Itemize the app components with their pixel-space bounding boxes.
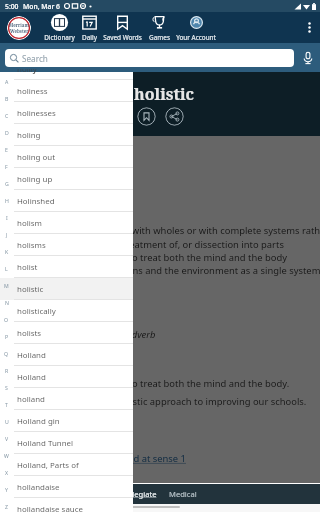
- button[interactable]: holisms: [0, 234, 133, 256]
- button[interactable]: Voice search: [300, 50, 316, 66]
- staticText: holistically hō-ˈli-sti-k(ə-)lē , adverb: [10, 328, 156, 341]
- button[interactable]: holinesses: [0, 102, 133, 124]
- staticText: W: [4, 452, 9, 459]
- button[interactable]: Collegiate: [116, 484, 162, 504]
- staticText: holistically: [17, 306, 56, 317]
- staticText: holing out: [17, 152, 56, 163]
- staticText: Games: [149, 33, 170, 42]
- staticText: H: [5, 197, 9, 204]
- staticText: F: [5, 163, 8, 170]
- button[interactable]: Holinshed: [0, 190, 133, 212]
- staticText: Holinshed: [17, 196, 55, 207]
- button[interactable]: Games: [137, 12, 181, 43]
- staticText: L: [5, 265, 8, 272]
- button[interactable]: holism: [0, 212, 133, 234]
- button[interactable]: Holland, Parts of: [0, 454, 133, 476]
- staticText: hollandaise: [17, 482, 60, 493]
- staticText: B: [5, 95, 9, 102]
- staticText: T: [5, 401, 8, 408]
- staticText: Holland gin: [17, 416, 60, 427]
- button[interactable]: holists: [0, 322, 133, 344]
- staticText: E: [5, 146, 8, 153]
- staticText: holinesses: [17, 108, 56, 119]
- staticText: holists: [17, 328, 42, 339]
- staticText: Mon, Mar 6: [23, 2, 60, 11]
- button[interactable]: Saved Words: [100, 12, 144, 43]
- staticText: First Known Use: [10, 426, 95, 440]
- staticText: R: [5, 367, 9, 374]
- staticText: Holland Tunnel: [17, 438, 74, 449]
- staticText: J: [6, 231, 8, 238]
- staticText: 2 : relating to or concerned with wholes…: [10, 224, 320, 276]
- staticText: Q: [4, 350, 9, 357]
- staticText: holisms: [17, 240, 46, 251]
- staticText: holistic in a: [10, 364, 70, 378]
- staticText: hollandaise sauce: [17, 504, 83, 512]
- button[interactable]: hollandaise sauce: [0, 498, 133, 512]
- staticText: holistic: [17, 284, 44, 295]
- button[interactable]: Share: [165, 107, 184, 126]
- staticText: holistic medicine attempts to treat both…: [10, 377, 307, 408]
- button[interactable]: holily: [0, 72, 133, 80]
- staticText: Collegiate: [121, 489, 157, 499]
- staticText: 5:00: [5, 2, 19, 11]
- button[interactable]: holistic: [0, 278, 133, 300]
- button[interactable]: Medical: [164, 484, 202, 504]
- staticText: holing: [17, 130, 41, 141]
- staticText: Holland: [17, 350, 46, 361]
- staticText: from holistic: [10, 308, 77, 322]
- button[interactable]: holing out: [0, 146, 133, 168]
- staticText: holiness: [17, 86, 48, 97]
- staticText: Daily: [82, 33, 97, 42]
- button[interactable]: holiness: [0, 80, 133, 102]
- staticText: 1926, in the meaning defined at sense 1: [10, 452, 186, 465]
- button[interactable]: hollandaise: [0, 476, 133, 498]
- button[interactable]: holing up: [0, 168, 133, 190]
- button[interactable]: Merriam-Webster home: [7, 16, 31, 40]
- staticText: holland: [17, 394, 45, 405]
- button[interactable]: Holland: [0, 344, 133, 366]
- button[interactable]: holing: [0, 124, 133, 146]
- button[interactable]: holistically: [0, 300, 133, 322]
- staticText: M: [4, 282, 9, 289]
- staticText: P: [5, 333, 9, 340]
- staticText: holism: [17, 218, 42, 229]
- staticText: Z: [5, 503, 8, 510]
- staticText: O: [4, 316, 9, 323]
- staticText: A: [5, 78, 9, 85]
- staticText: Dictionary: [44, 33, 75, 42]
- staticText: N: [5, 299, 9, 306]
- button[interactable]: holland: [0, 388, 133, 410]
- staticText: to holism: [10, 206, 52, 219]
- staticText: Merriam: [9, 22, 29, 28]
- staticText: holily: [17, 72, 37, 75]
- staticText: Y: [5, 486, 8, 493]
- button[interactable]: Holland: [0, 366, 133, 388]
- staticText: Saved Words: [103, 33, 142, 42]
- staticText: Medical: [169, 489, 197, 499]
- button[interactable]: More options: [300, 18, 318, 36]
- staticText: D: [5, 129, 9, 136]
- staticText: Definition of: [10, 144, 76, 158]
- staticText: holing up: [17, 174, 53, 185]
- staticText: holistic: [134, 83, 195, 105]
- staticText: Other Words: [10, 286, 77, 300]
- button[interactable]: holist: [0, 256, 133, 278]
- staticText: holistic: [10, 166, 49, 180]
- button[interactable]: Save word: [137, 107, 156, 126]
- button[interactable]: Dictionary: [37, 12, 81, 43]
- staticText: I: [6, 214, 8, 221]
- button[interactable]: Your Account: [174, 12, 218, 43]
- staticText: S: [5, 384, 8, 391]
- staticText: Holland, Parts of: [17, 460, 79, 471]
- staticText: 1 : of or relating: [10, 192, 81, 205]
- button[interactable]: Holland Tunnel: [0, 432, 133, 454]
- staticText: Your Account: [176, 33, 216, 42]
- button[interactable]: Holland gin: [0, 410, 133, 432]
- staticText: C: [5, 112, 9, 119]
- staticText: Webster: [10, 28, 29, 34]
- button[interactable]: Search: [5, 49, 294, 67]
- staticText: Examples of: [10, 351, 74, 365]
- button[interactable]: Daily: [67, 12, 111, 43]
- staticText: G: [5, 180, 9, 187]
